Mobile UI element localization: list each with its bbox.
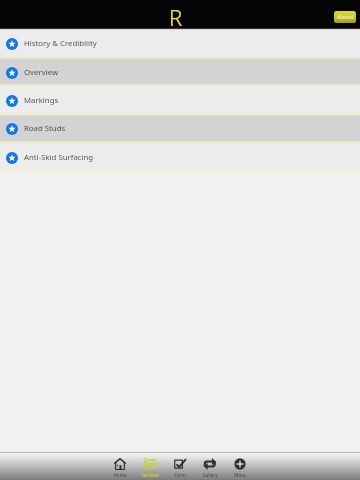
staticText: Road Studs bbox=[24, 123, 66, 134]
button[interactable]: Home bbox=[105, 453, 135, 480]
staticText: Gallery bbox=[202, 472, 218, 478]
button[interactable]: Form bbox=[165, 453, 195, 480]
staticText: Anti-Skid Surfacing bbox=[24, 152, 94, 163]
staticText: R bbox=[169, 2, 183, 32]
staticText: About bbox=[337, 13, 354, 21]
staticText: Markings bbox=[24, 95, 59, 106]
staticText: More bbox=[234, 472, 246, 478]
button[interactable]: Anti-Skid Surfacing bbox=[0, 145, 360, 173]
button[interactable]: History & Credibility bbox=[0, 31, 360, 59]
button[interactable]: Markings bbox=[0, 88, 360, 116]
staticText: History & Credibility bbox=[24, 38, 97, 49]
button[interactable]: Road Studs bbox=[0, 116, 360, 144]
staticText: Home bbox=[113, 472, 127, 478]
staticText: Services bbox=[141, 472, 159, 478]
button[interactable]: More bbox=[225, 453, 255, 480]
staticText: Form bbox=[174, 472, 186, 478]
button[interactable]: Overview bbox=[0, 60, 360, 88]
button[interactable]: Gallery bbox=[195, 453, 225, 480]
staticText: Overview bbox=[24, 67, 59, 78]
button[interactable]: About bbox=[334, 11, 356, 23]
button[interactable]: Services bbox=[135, 453, 165, 480]
